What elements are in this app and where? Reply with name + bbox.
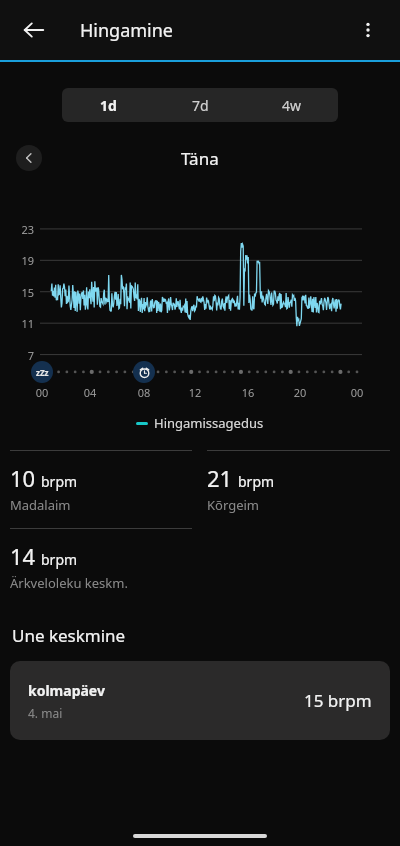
staticText: 15 bbox=[4, 285, 34, 300]
staticText: 21 bbox=[207, 463, 233, 493]
staticText: 4. mai bbox=[28, 705, 63, 721]
button[interactable]: kolmapäev bbox=[10, 661, 390, 740]
button[interactable]: 7d bbox=[154, 88, 246, 122]
staticText: 00 bbox=[346, 385, 368, 400]
button[interactable]: Sleep bbox=[31, 361, 53, 383]
staticText: zZz bbox=[36, 367, 49, 378]
staticText: 7d bbox=[192, 96, 209, 115]
staticText: 16 bbox=[237, 385, 259, 400]
staticText: Täna bbox=[181, 147, 219, 170]
staticText: 19 bbox=[4, 253, 34, 268]
button[interactable]: 1d bbox=[62, 88, 154, 122]
staticText: Madalaim bbox=[10, 496, 71, 514]
staticText: 4w bbox=[282, 96, 302, 115]
staticText: brpm bbox=[238, 472, 275, 491]
staticText: 04 bbox=[79, 385, 101, 400]
staticText: 15 brpm bbox=[304, 689, 372, 712]
staticText: Hingamissagedus bbox=[154, 414, 264, 432]
staticText: 7 bbox=[4, 348, 34, 363]
button[interactable]: Previous day bbox=[16, 145, 42, 171]
staticText: 10 bbox=[10, 463, 36, 493]
staticText: brpm bbox=[41, 472, 78, 491]
staticText: 08 bbox=[133, 385, 155, 400]
button[interactable]: 14 bbox=[10, 528, 192, 592]
staticText: 14 bbox=[10, 541, 36, 571]
staticText: 12 bbox=[184, 385, 206, 400]
staticText: Hingamine bbox=[80, 18, 174, 43]
button[interactable]: 10 bbox=[10, 450, 192, 514]
staticText: Une keskmine bbox=[12, 624, 126, 647]
staticText: 00 bbox=[31, 385, 53, 400]
staticText: Kõrgeim bbox=[207, 496, 259, 514]
button[interactable]: Back bbox=[12, 8, 56, 52]
staticText: 23 bbox=[4, 222, 34, 237]
button[interactable]: 21 bbox=[207, 450, 390, 514]
button[interactable]: Alarm bbox=[133, 361, 155, 383]
staticText: 11 bbox=[4, 316, 34, 331]
staticText: kolmapäev bbox=[28, 681, 105, 700]
staticText: Ärkveloleku keskm. bbox=[10, 574, 128, 592]
button[interactable]: 4w bbox=[246, 88, 338, 122]
staticText: 1d bbox=[100, 96, 117, 115]
staticText: 20 bbox=[289, 385, 311, 400]
staticText: brpm bbox=[41, 550, 78, 569]
button[interactable]: More options bbox=[346, 8, 390, 52]
